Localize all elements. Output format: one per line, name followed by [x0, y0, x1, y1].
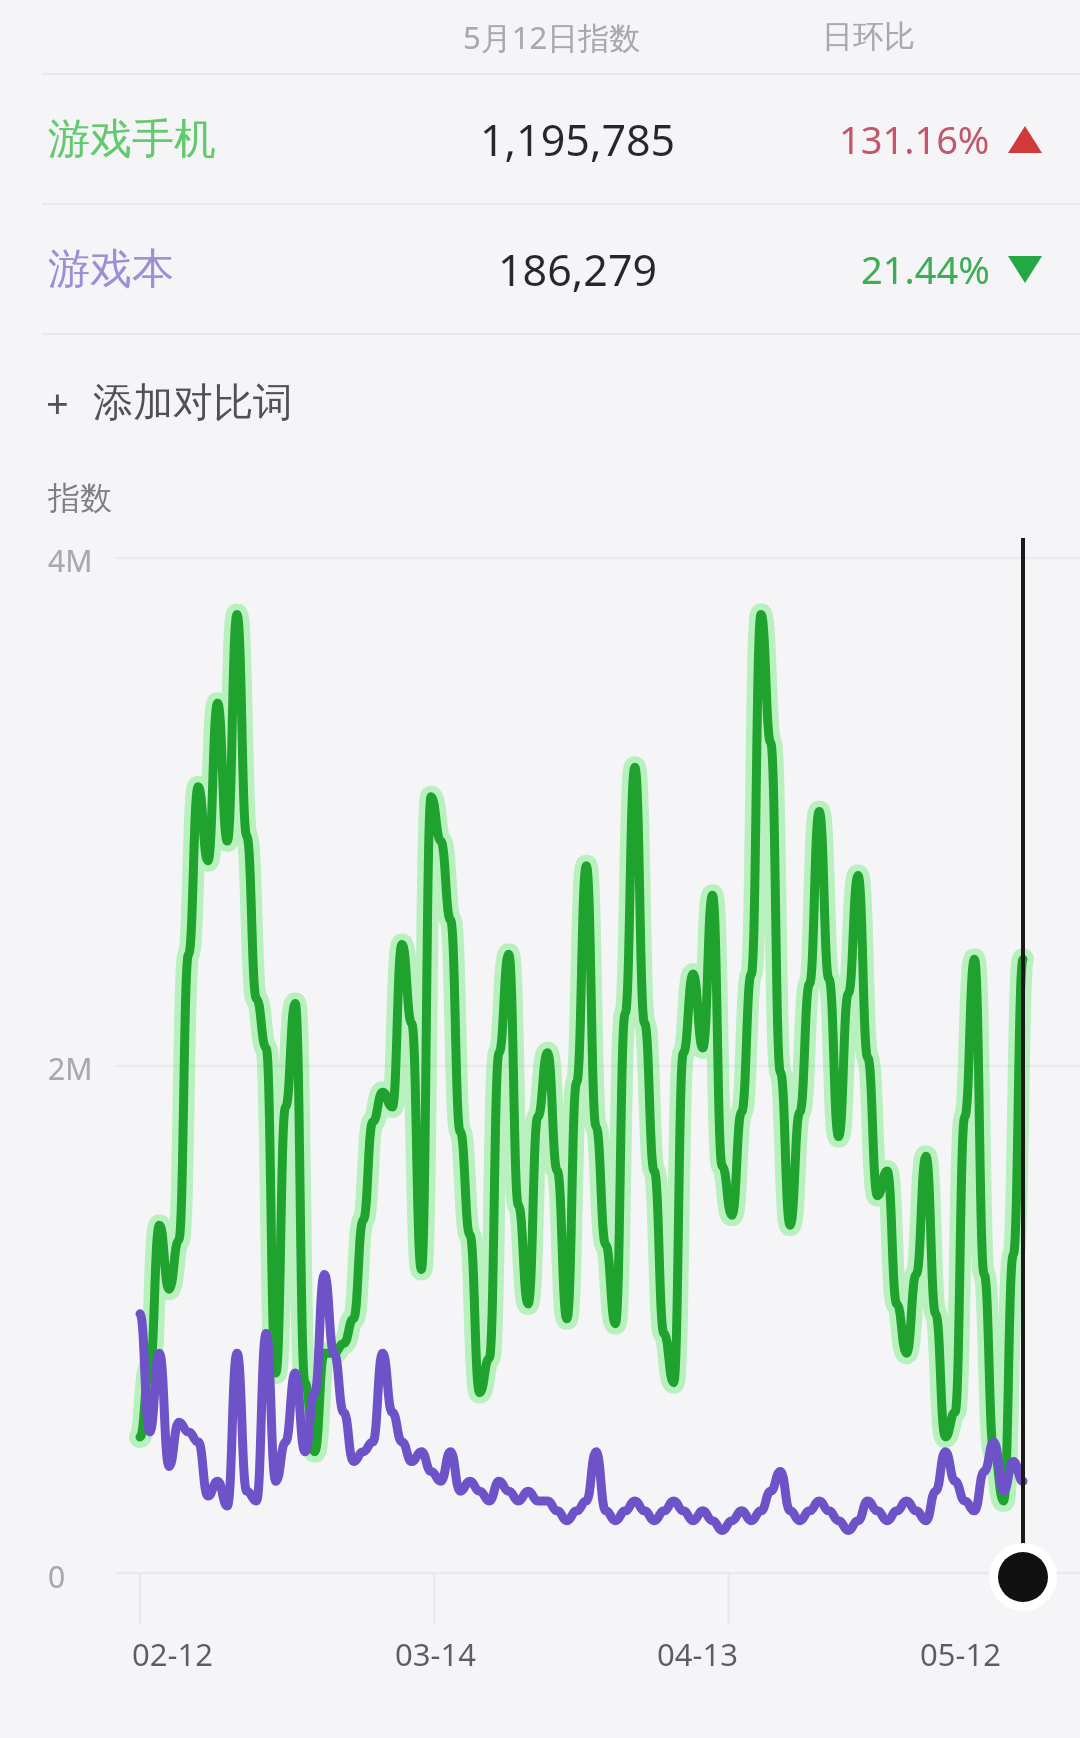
staticText: 游戏手机 — [48, 113, 216, 166]
staticText: 指数 — [48, 478, 112, 518]
staticText: 添加对比词 — [93, 377, 293, 427]
staticText: 0 — [48, 1556, 66, 1597]
button[interactable]: + — [0, 335, 1080, 468]
staticText: + — [46, 375, 69, 429]
staticText: 日环比 — [822, 17, 915, 56]
staticText: 1,195,785 — [480, 110, 676, 169]
button[interactable]: 游戏本 — [0, 205, 1080, 333]
staticText: 02-12 — [132, 1633, 213, 1675]
staticText: 186,279 — [498, 240, 658, 299]
staticText: 4M — [48, 540, 93, 581]
staticText: 131.16% — [839, 113, 990, 165]
staticText: 21.44% — [861, 243, 990, 295]
other: Up — [1008, 126, 1042, 153]
staticText: 05-12 — [920, 1633, 1001, 1675]
staticText: 04-13 — [657, 1633, 738, 1675]
other: Down — [1008, 256, 1042, 283]
staticText: 游戏本 — [48, 243, 174, 296]
staticText: 5月12日指数 — [463, 16, 641, 58]
staticText: 03-14 — [395, 1633, 476, 1675]
staticText: 2M — [48, 1048, 93, 1089]
button[interactable]: 游戏手机 — [0, 75, 1080, 203]
